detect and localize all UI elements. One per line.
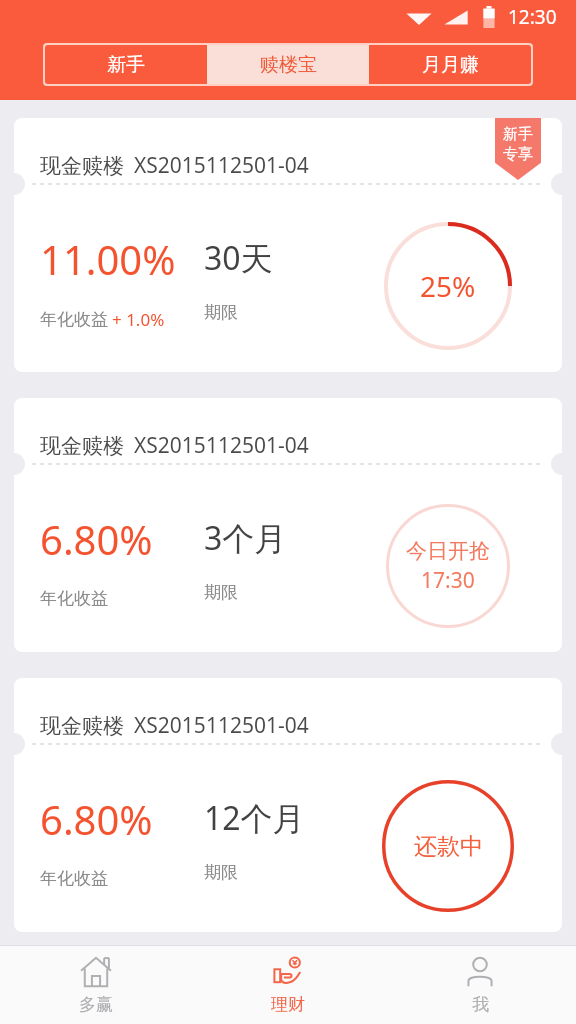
button[interactable]: 新手 [45, 45, 207, 84]
staticText: 新手 [503, 125, 533, 144]
staticText: 年化收益 [40, 588, 108, 609]
staticText: 赎楼宝 [260, 53, 317, 77]
staticText: 现金赎楼 [40, 713, 124, 739]
button[interactable]: 赎楼宝 [207, 45, 369, 84]
button[interactable]: 现金赎楼 [14, 678, 562, 932]
staticText: XS2015112501-04 [134, 151, 309, 180]
staticText: 17:30 [421, 566, 475, 595]
staticText: 3个月 [204, 516, 287, 560]
staticText: 年化收益 [40, 868, 108, 889]
staticText: 6.80% [40, 512, 153, 566]
button[interactable]: 月月赚 [369, 45, 531, 84]
staticText: 6.80% [40, 792, 153, 846]
staticText: 现金赎楼 [40, 433, 124, 459]
staticText: 还款中 [414, 832, 483, 861]
staticText: 12个月 [204, 796, 305, 840]
button[interactable]: 我 [384, 946, 576, 1024]
staticText: 理财 [271, 994, 305, 1015]
staticText: 年化收益 [40, 309, 108, 330]
staticText: 现金赎楼 [40, 153, 124, 179]
staticText: XS2015112501-04 [134, 711, 309, 740]
button[interactable]: 多赢 [0, 946, 192, 1024]
staticText: 期限 [204, 862, 238, 883]
staticText: 月月赚 [422, 53, 479, 77]
staticText: 多赢 [79, 994, 113, 1015]
staticText: 我 [472, 994, 489, 1015]
staticText: 今日开抢 [406, 538, 490, 564]
staticText: + 1.0% [112, 308, 165, 331]
staticText: 期限 [204, 302, 238, 323]
staticText: 12:30 [508, 4, 557, 30]
staticText: 专享 [503, 145, 533, 164]
staticText: 25% [420, 267, 476, 305]
staticText: 期限 [204, 582, 238, 603]
staticText: 30天 [204, 236, 273, 280]
staticText: 11.00% [40, 232, 176, 286]
staticText: 新手 [107, 53, 145, 77]
button[interactable]: 理财 [192, 946, 384, 1024]
button[interactable]: 现金赎楼 [14, 398, 562, 652]
button[interactable]: 现金赎楼 [14, 118, 562, 372]
staticText: XS2015112501-04 [134, 431, 309, 460]
